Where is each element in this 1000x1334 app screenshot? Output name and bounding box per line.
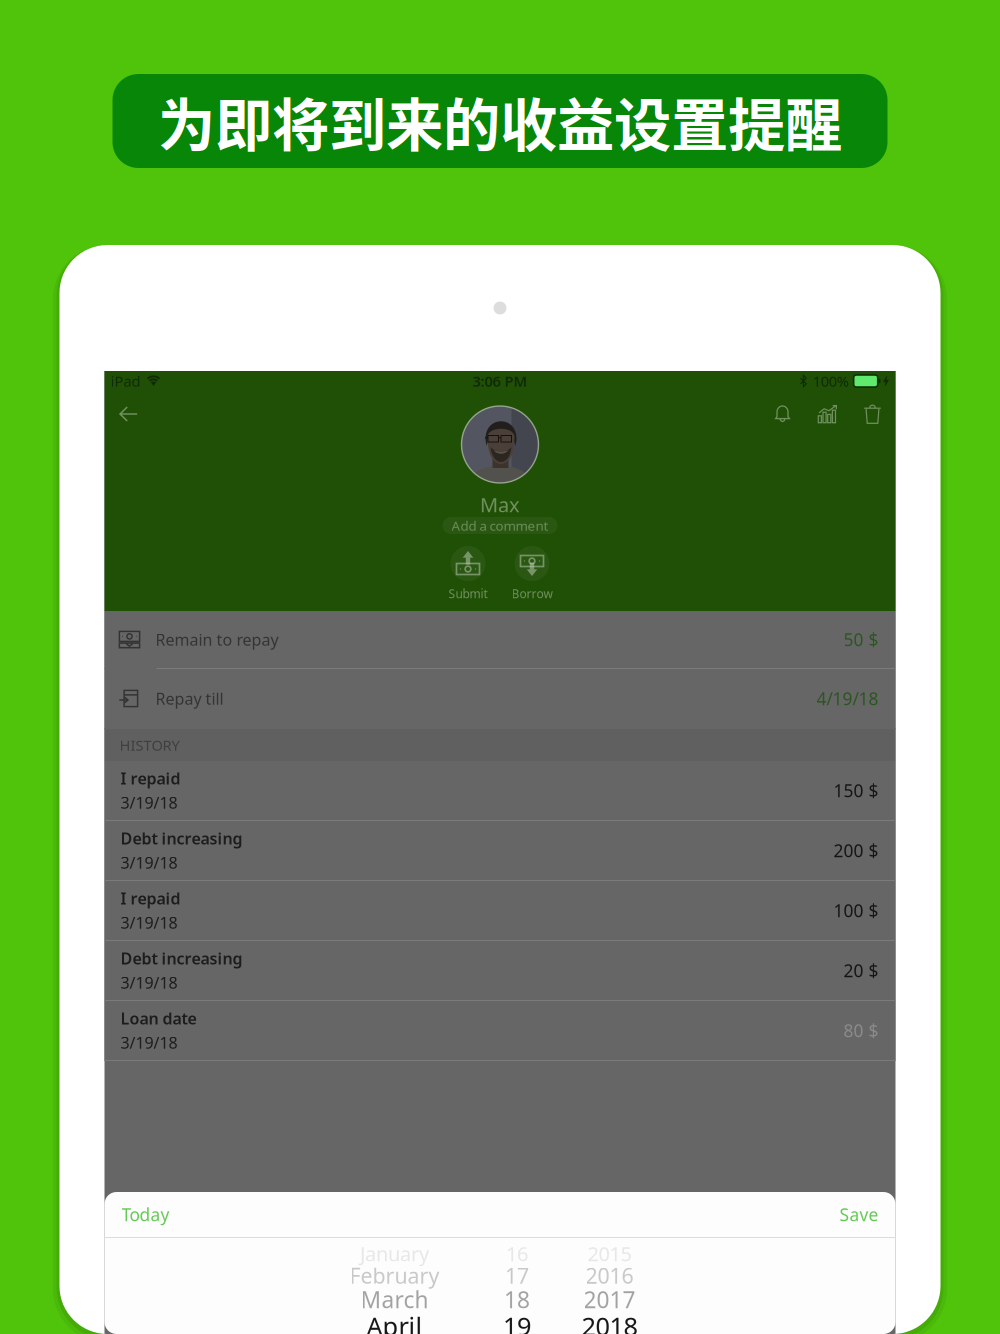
button[interactable]: Borrow	[514, 546, 549, 600]
staticText: 100%	[813, 371, 849, 391]
staticText: 80 $	[843, 1019, 878, 1042]
staticText: Debt increasing	[120, 948, 242, 969]
staticText: January	[360, 1240, 429, 1267]
staticText: 50 $	[843, 628, 878, 651]
button[interactable]: Debt increasing	[104, 821, 895, 881]
staticText: April	[366, 1309, 422, 1334]
staticText: 2018	[581, 1309, 637, 1334]
staticText: 2016	[585, 1261, 633, 1290]
button[interactable]: Reminders	[760, 391, 804, 437]
staticText: 3/19/18	[120, 972, 177, 993]
staticText: Borrow	[511, 585, 552, 601]
staticText: 为即将到来的收益设置提醒	[158, 79, 842, 162]
staticText: 19	[503, 1309, 531, 1334]
staticText: March	[360, 1284, 428, 1314]
staticText: 2017	[583, 1284, 635, 1314]
staticText: 3/19/18	[120, 792, 177, 813]
button[interactable]: Debt increasing	[104, 941, 895, 1001]
staticText: February	[349, 1261, 439, 1290]
staticText: 3/19/18	[120, 852, 177, 873]
staticText: 17	[505, 1261, 529, 1290]
button[interactable]: Statistics	[804, 391, 850, 437]
button[interactable]: Remain to repay	[104, 611, 895, 669]
staticText: Debt increasing	[120, 828, 242, 849]
staticText: Max	[480, 491, 520, 518]
button[interactable]: Repay till	[104, 669, 895, 729]
staticText: 150 $	[833, 779, 878, 802]
button[interactable]: Save	[815, 1191, 878, 1238]
staticText: 20 $	[843, 959, 878, 982]
staticText: Repay till	[155, 688, 223, 709]
staticText: 200 $	[833, 839, 878, 862]
staticText: 4/19/18	[816, 687, 878, 710]
button[interactable]: I repaid	[104, 761, 895, 821]
staticText: 16	[506, 1240, 528, 1267]
button[interactable]: Loan date	[104, 1001, 895, 1061]
staticText: 2015	[587, 1240, 631, 1267]
staticText: Remain to repay	[155, 629, 278, 650]
button[interactable]: I repaid	[104, 881, 895, 941]
button[interactable]: Today	[121, 1191, 193, 1238]
staticText: Submit	[448, 585, 487, 601]
staticText: Add a comment	[451, 517, 548, 534]
staticText: 3/19/18	[120, 1032, 177, 1053]
staticText: Save	[839, 1203, 878, 1226]
staticText: iPad	[110, 371, 140, 391]
button[interactable]: Delete	[850, 391, 894, 437]
staticText: I repaid	[120, 888, 180, 909]
staticText: I repaid	[120, 768, 180, 789]
button[interactable]: Add a comment	[442, 517, 557, 534]
staticText: Loan date	[120, 1008, 196, 1029]
staticText: Today	[121, 1203, 169, 1226]
staticText: 100 $	[833, 899, 878, 922]
staticText: 3:06 PM	[472, 371, 527, 391]
staticText: 3/19/18	[120, 912, 177, 933]
staticText: HISTORY	[119, 735, 179, 755]
button[interactable]: Submit	[450, 546, 485, 600]
staticText: 18	[504, 1284, 530, 1314]
button[interactable]: Back	[106, 391, 150, 437]
